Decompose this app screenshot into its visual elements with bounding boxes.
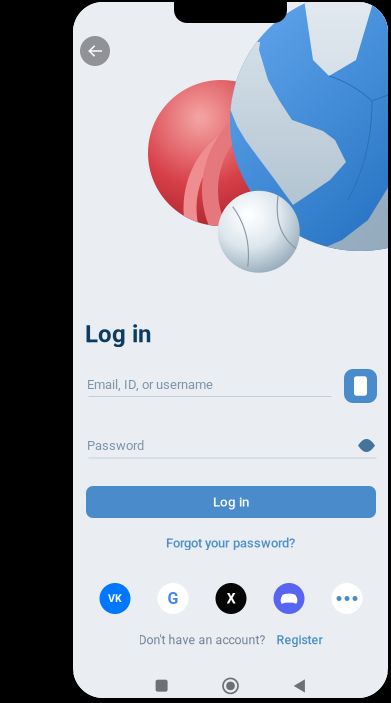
staticText: Don't have an account?	[138, 633, 265, 647]
button[interactable]: Show password	[358, 437, 375, 454]
button[interactable]: Sign in with VK	[99, 583, 130, 614]
button[interactable]: More sign-in options	[331, 583, 362, 614]
button[interactable]: Home	[222, 678, 238, 694]
staticText: G	[167, 589, 178, 608]
button[interactable]: Sign in with Discord	[273, 583, 304, 614]
staticText: Register	[276, 633, 322, 647]
staticText: Password	[87, 438, 144, 453]
button[interactable]: Sign in with phone number	[344, 369, 377, 403]
staticText: X	[226, 590, 235, 607]
button[interactable]: Sign in with X	[215, 583, 246, 614]
button[interactable]: Register	[276, 633, 322, 647]
button[interactable]: Sign in with Google	[157, 583, 188, 614]
button[interactable]: Forgot your password?	[73, 535, 388, 551]
button[interactable]: Back	[80, 36, 110, 66]
staticText: Forgot your password?	[166, 535, 295, 551]
button[interactable]: Log in	[86, 486, 376, 518]
button[interactable]: Back	[294, 679, 305, 693]
staticText: Log in	[85, 320, 151, 348]
staticText: Email, ID, or username	[87, 377, 213, 392]
staticText: VK	[108, 592, 122, 605]
staticText: Log in	[213, 494, 249, 510]
button[interactable]: Recent apps	[156, 680, 168, 692]
